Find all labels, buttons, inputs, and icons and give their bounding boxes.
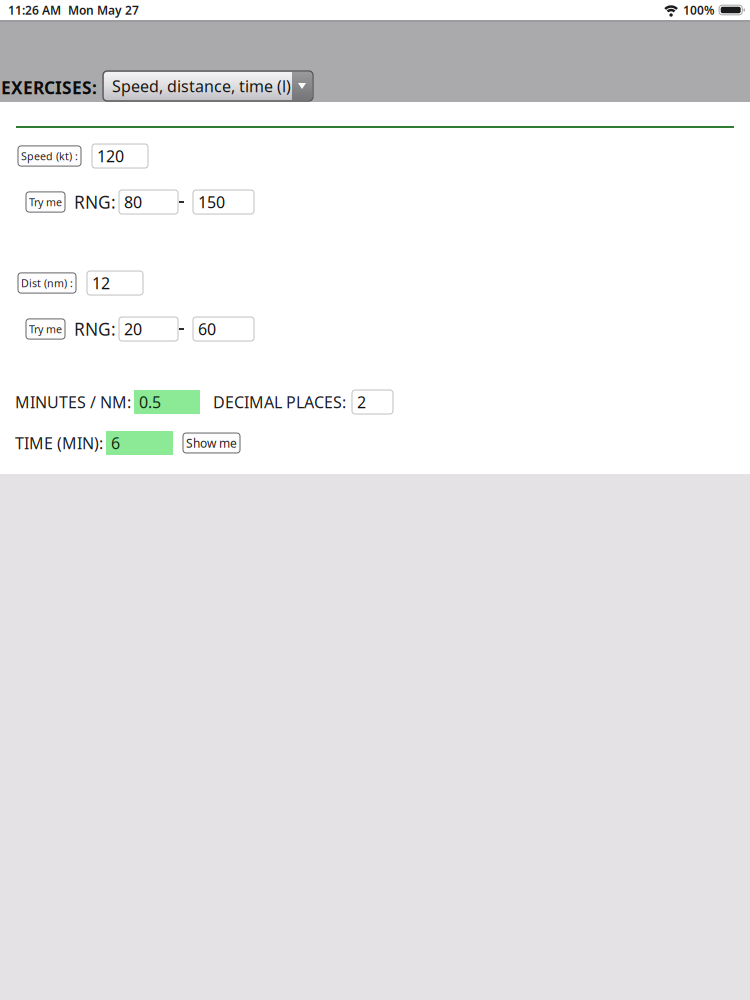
button[interactable]: Show me xyxy=(183,433,240,453)
staticText: 0.5 xyxy=(139,391,161,413)
staticText: RNG: xyxy=(74,190,116,213)
button[interactable]: 0.5 xyxy=(134,390,200,414)
button[interactable]: 20 xyxy=(119,317,178,341)
staticText: Speed, distance, time (l) xyxy=(112,75,291,97)
staticText: EXERCISES: xyxy=(1,76,97,99)
staticText: Mon May 27 xyxy=(68,2,139,18)
button[interactable]: Dist (nm) : xyxy=(18,273,76,293)
button[interactable]: 6 xyxy=(106,431,173,455)
staticText: 150 xyxy=(198,191,225,213)
button[interactable]: 60 xyxy=(193,317,254,341)
staticText: TIME (MIN): xyxy=(15,432,103,454)
button[interactable]: Speed, distance, time (l) xyxy=(103,71,313,101)
staticText: 60 xyxy=(198,318,216,340)
staticText: Dist (nm) : xyxy=(21,276,73,290)
staticText: DECIMAL PLACES: xyxy=(213,391,346,413)
staticText: 120 xyxy=(97,145,124,167)
staticText: 11:26 AM xyxy=(8,2,61,18)
staticText: 20 xyxy=(124,318,142,340)
staticText: 100% xyxy=(683,2,715,18)
staticText: Try me xyxy=(29,195,62,209)
staticText: 80 xyxy=(124,191,142,213)
staticText: Show me xyxy=(186,435,237,451)
button[interactable]: 150 xyxy=(193,190,254,214)
button[interactable]: 80 xyxy=(119,190,178,214)
staticText: Speed (kt) : xyxy=(21,149,78,163)
button[interactable]: Speed (kt) : xyxy=(18,146,81,166)
button[interactable]: Try me xyxy=(26,192,65,212)
staticText: 2 xyxy=(357,391,366,413)
staticText: MINUTES / NM: xyxy=(15,391,131,413)
button[interactable]: Try me xyxy=(26,319,65,339)
staticText: RNG: xyxy=(74,317,116,340)
staticText: 12 xyxy=(92,272,110,294)
button[interactable]: 2 xyxy=(352,390,393,414)
staticText: 6 xyxy=(111,432,120,454)
button[interactable]: 12 xyxy=(87,271,143,295)
button[interactable]: 120 xyxy=(92,144,148,168)
staticText: Try me xyxy=(29,322,62,336)
